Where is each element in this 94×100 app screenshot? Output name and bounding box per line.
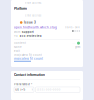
- button[interactable]: US (+1): [14, 87, 34, 92]
- staticText: US (+1): [15, 88, 25, 91]
- staticText: Issue 3: [24, 21, 36, 24]
- button[interactable]: Indicated fit count: [14, 57, 80, 62]
- staticText: v: [32, 88, 33, 91]
- button[interactable]: Issue 3: [14, 20, 80, 25]
- staticText: open.findhealth.which.stag: [14, 26, 57, 29]
- staticText: Indicated fit count: [14, 53, 42, 57]
- staticText: Enter address: [25, 1, 41, 5]
- staticText: Contact information: [14, 73, 45, 77]
- staticText: Support: [22, 30, 34, 34]
- staticText: Eco Protected: [20, 34, 42, 38]
- staticText: 09:45 - 544: [65, 26, 80, 29]
- button[interactable]: (555) 000-0000: [36, 87, 80, 92]
- staticText: Enter address: [25, 14, 41, 17]
- staticText: Edit: [14, 49, 20, 53]
- staticText: Phone number *: [14, 83, 32, 86]
- staticText: From: [14, 30, 20, 34]
- staticText: Indicated fit count: [14, 57, 43, 60]
- button[interactable]: open.findhealth.which.stag: [14, 26, 57, 29]
- staticText: None: [14, 45, 22, 49]
- staticText: Platform: [14, 7, 27, 10]
- staticText: (555) 000-0000: [37, 88, 61, 91]
- staticText: green: [75, 46, 80, 48]
- staticText: To: [14, 34, 18, 38]
- staticText: Content: [14, 41, 26, 45]
